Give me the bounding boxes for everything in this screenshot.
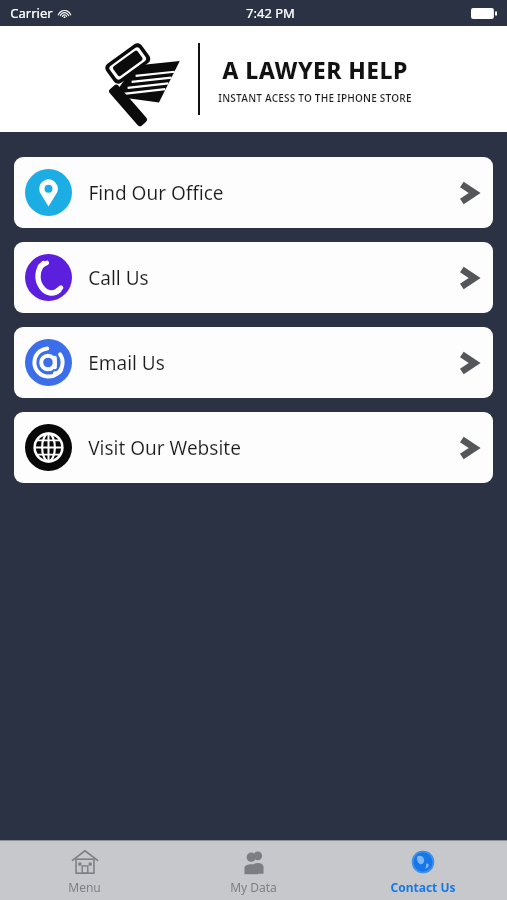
staticText: 7:42 PM xyxy=(246,4,295,22)
staticText: Call Us xyxy=(88,265,149,291)
button[interactable]: Contact Us xyxy=(338,842,507,899)
button[interactable]: Find Our Office xyxy=(14,157,493,228)
button[interactable]: Visit Our Website xyxy=(14,412,493,483)
staticText: A LAWYER HELP xyxy=(222,54,408,85)
button[interactable]: My Data xyxy=(169,842,338,899)
button[interactable]: Menu xyxy=(0,842,169,899)
staticText: Visit Our Website xyxy=(88,435,241,461)
button[interactable]: Email Us xyxy=(14,327,493,398)
staticText: Menu xyxy=(68,879,101,895)
staticText: INSTANT ACESS TO THE IPHONE STORE xyxy=(218,91,412,105)
staticText: Email Us xyxy=(88,350,165,376)
staticText: Carrier xyxy=(10,4,53,22)
staticText: Find Our Office xyxy=(88,180,224,206)
button[interactable]: Call Us xyxy=(14,242,493,313)
staticText: My Data xyxy=(230,879,277,895)
staticText: Contact Us xyxy=(390,879,456,895)
